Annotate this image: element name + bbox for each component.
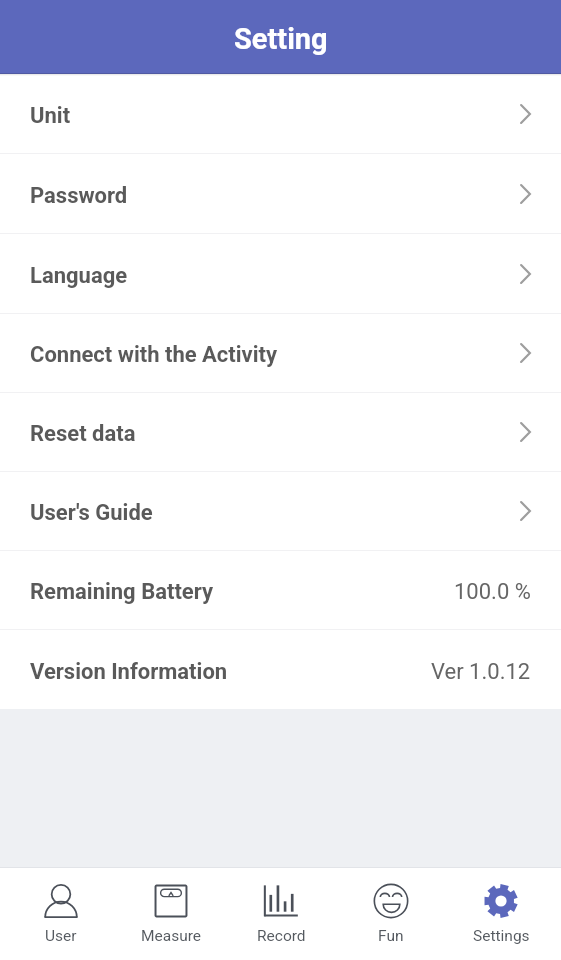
staticText: Connect with the Activity bbox=[30, 342, 278, 368]
button[interactable]: Remaining Battery bbox=[0, 551, 561, 629]
button[interactable]: User's Guide bbox=[0, 472, 561, 550]
button[interactable]: Record bbox=[226, 868, 336, 960]
button[interactable]: Settings bbox=[446, 868, 556, 960]
button[interactable]: Measure bbox=[116, 868, 226, 960]
button[interactable]: Fun bbox=[336, 868, 446, 960]
staticText: Setting bbox=[234, 22, 328, 56]
staticText: Password bbox=[30, 183, 128, 209]
staticText: User bbox=[45, 927, 77, 945]
staticText: Remaining Battery bbox=[30, 579, 214, 605]
staticText: Measure bbox=[141, 927, 202, 945]
button[interactable]: Language bbox=[0, 234, 561, 313]
button[interactable]: Reset data bbox=[0, 393, 561, 471]
button[interactable]: User bbox=[5, 868, 116, 960]
staticText: Reset data bbox=[30, 421, 136, 447]
button[interactable]: Version Information bbox=[0, 630, 561, 709]
staticText: 100.0 % bbox=[454, 579, 531, 605]
staticText: Settings bbox=[473, 927, 530, 945]
staticText: Unit bbox=[30, 103, 71, 129]
button[interactable]: Connect with the Activity bbox=[0, 314, 561, 392]
staticText: Ver 1.0.12 bbox=[431, 659, 531, 685]
button[interactable]: Unit bbox=[0, 74, 561, 153]
button[interactable]: Password bbox=[0, 154, 561, 233]
staticText: Record bbox=[257, 927, 306, 945]
staticText: Language bbox=[30, 263, 128, 289]
staticText: Version Information bbox=[30, 659, 228, 685]
staticText: User's Guide bbox=[30, 500, 153, 526]
staticText: Fun bbox=[378, 927, 404, 945]
